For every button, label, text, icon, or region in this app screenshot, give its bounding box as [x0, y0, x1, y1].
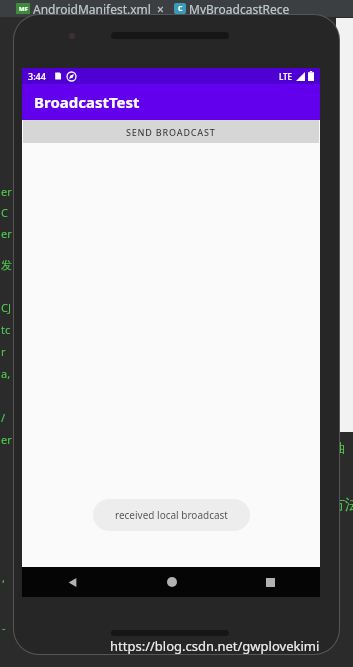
staticText: BroadcastTest [34, 92, 140, 112]
staticText: - [2, 620, 6, 635]
staticText: tc [1, 322, 11, 337]
staticText: C [1, 205, 8, 220]
staticText: , [2, 570, 5, 585]
staticText: er [1, 432, 12, 447]
staticText: CJ [1, 300, 11, 315]
staticText: 方法 [331, 496, 353, 514]
staticText: C [178, 4, 183, 14]
button[interactable]: BroadcastTest [22, 84, 320, 120]
staticText: 3:44 [28, 70, 46, 82]
staticText: AndroidManifest.xml [33, 1, 151, 17]
staticText: a, [1, 366, 11, 381]
staticText: SEND BROADCAST [126, 126, 216, 138]
staticText: LTE [279, 71, 293, 82]
button[interactable]: Recent apps [221, 567, 320, 597]
staticText: received local broadcast [115, 508, 228, 522]
staticText: er [1, 184, 12, 199]
button[interactable]: Home [122, 567, 221, 597]
staticText: r [1, 344, 6, 359]
button[interactable]: SEND BROADCAST [23, 120, 319, 143]
staticText: MF [19, 5, 28, 13]
staticText: / [1, 410, 6, 425]
staticText: 抽 [332, 440, 345, 456]
staticText: er [1, 226, 12, 241]
staticText: × [157, 1, 164, 17]
staticText: MyBroadcastRece [189, 1, 290, 17]
button[interactable]: Back [22, 567, 122, 597]
staticText: 发 [1, 258, 12, 272]
staticText: https://blog.csdn.net/gwplovekimi [110, 637, 320, 655]
